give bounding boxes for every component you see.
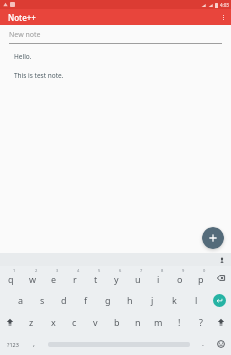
button[interactable]: ,: [26, 333, 42, 355]
staticText: Note++: [8, 12, 36, 23]
button[interactable]: 6: [106, 266, 127, 289]
staticText: b: [114, 316, 120, 328]
staticText: f: [84, 294, 88, 306]
staticText: n: [135, 316, 141, 328]
staticText: q: [8, 273, 14, 285]
staticText: d: [61, 294, 67, 306]
button[interactable]: f: [75, 289, 97, 311]
button[interactable]: Enter: [207, 289, 231, 311]
staticText: ,: [33, 339, 35, 349]
staticText: w: [29, 273, 37, 285]
button[interactable]: Backspace: [211, 266, 231, 289]
staticText: l: [195, 294, 198, 306]
button[interactable]: b: [106, 311, 127, 333]
staticText: g: [105, 294, 111, 306]
button[interactable]: Space: [42, 333, 195, 355]
button[interactable]: ?: [190, 311, 211, 333]
button[interactable]: 9: [169, 266, 190, 289]
staticText: .: [202, 339, 204, 349]
staticText: 4: [77, 268, 80, 273]
button[interactable]: More options: [215, 9, 231, 25]
button[interactable]: l: [185, 289, 207, 311]
button[interactable]: c: [64, 311, 85, 333]
staticText: z: [29, 316, 34, 328]
button[interactable]: Emoji: [211, 333, 231, 355]
staticText: p: [198, 273, 204, 285]
staticText: 3: [56, 268, 59, 273]
staticText: k: [172, 294, 177, 306]
staticText: a: [18, 294, 24, 306]
button[interactable]: 5: [85, 266, 106, 289]
button[interactable]: 1: [0, 266, 22, 289]
button[interactable]: ?123: [0, 333, 26, 355]
staticText: 7: [140, 268, 143, 273]
button[interactable]: Shift: [211, 311, 231, 333]
button[interactable]: a: [10, 289, 31, 311]
button[interactable]: 3: [43, 266, 64, 289]
staticText: 0: [203, 268, 206, 273]
staticText: 1: [13, 268, 16, 273]
button[interactable]: v: [85, 311, 106, 333]
staticText: s: [40, 294, 45, 306]
staticText: t: [94, 273, 98, 285]
staticText: 9: [182, 268, 185, 273]
staticText: j: [151, 294, 154, 306]
staticText: h: [127, 294, 133, 306]
staticText: x: [51, 316, 56, 328]
staticText: m: [154, 316, 163, 328]
button[interactable]: 7: [127, 266, 148, 289]
button[interactable]: x: [42, 311, 64, 333]
button[interactable]: Add note: [202, 227, 224, 249]
button[interactable]: g: [97, 289, 119, 311]
staticText: This is test note.: [14, 71, 64, 80]
button[interactable]: 4: [64, 266, 85, 289]
button[interactable]: 2: [22, 266, 43, 289]
staticText: c: [72, 316, 77, 328]
staticText: !: [178, 316, 181, 328]
button[interactable]: m: [148, 311, 169, 333]
staticText: 6: [119, 268, 122, 273]
button[interactable]: d: [53, 289, 75, 311]
button[interactable]: h: [119, 289, 141, 311]
staticText: v: [93, 316, 98, 328]
staticText: New note: [9, 30, 41, 40]
button[interactable]: j: [141, 289, 163, 311]
button[interactable]: Shift: [0, 311, 20, 333]
button[interactable]: s: [31, 289, 53, 311]
staticText: ?123: [7, 341, 19, 348]
staticText: r: [73, 273, 77, 285]
staticText: ?: [199, 316, 203, 328]
button[interactable]: 0: [190, 266, 211, 289]
button[interactable]: k: [163, 289, 185, 311]
button[interactable]: !: [169, 311, 190, 333]
staticText: y: [114, 273, 119, 285]
button[interactable]: .: [195, 333, 211, 355]
staticText: i: [157, 273, 160, 285]
staticText: Hello.: [14, 52, 32, 61]
staticText: e: [51, 273, 57, 285]
staticText: o: [177, 273, 183, 285]
staticText: 8: [161, 268, 164, 273]
staticText: 5: [98, 268, 101, 273]
button[interactable]: Voice input: [217, 255, 226, 264]
staticText: 4:03: [220, 2, 229, 8]
button[interactable]: 8: [148, 266, 169, 289]
button[interactable]: z: [20, 311, 42, 333]
button[interactable]: n: [127, 311, 148, 333]
staticText: 2: [35, 268, 38, 273]
staticText: u: [135, 273, 141, 285]
